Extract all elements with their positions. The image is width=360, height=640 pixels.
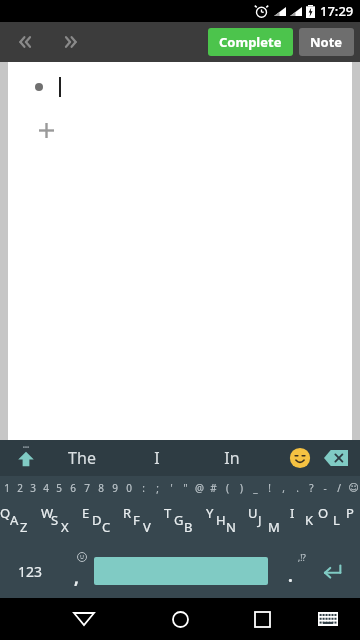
staticText: !: [268, 481, 271, 495]
staticText: _: [253, 481, 258, 495]
button[interactable]: Expand suggestions: [0, 440, 52, 476]
button[interactable]: 5: [52, 476, 66, 500]
button[interactable]: @: [192, 476, 206, 500]
button[interactable]: 1: [0, 476, 13, 500]
button[interactable]: 123: [4, 544, 56, 598]
button[interactable]: !: [262, 476, 276, 500]
button[interactable]: -: [318, 476, 332, 500]
staticText: In: [224, 447, 240, 469]
staticText: W: [41, 504, 54, 522]
staticText: 17:29: [320, 2, 354, 20]
button[interactable]: Complete: [208, 28, 293, 56]
button[interactable]: Comma: [56, 544, 92, 598]
staticText: X: [61, 518, 69, 536]
staticText: Complete: [219, 33, 282, 51]
button[interactable]: T: [164, 500, 206, 544]
staticText: Note: [310, 33, 343, 51]
button[interactable]: Backspace: [318, 440, 354, 476]
button[interactable]: Q: [0, 500, 41, 544]
staticText: /: [337, 481, 341, 495]
button[interactable]: 9: [108, 476, 122, 500]
staticText: O: [318, 504, 329, 522]
button[interactable]: Add item: [28, 112, 64, 148]
button[interactable]: (: [220, 476, 234, 500]
staticText: ;: [156, 481, 159, 495]
button[interactable]: In: [195, 440, 269, 476]
button[interactable]: [8, 70, 352, 104]
button[interactable]: ): [234, 476, 248, 500]
staticText: 2: [17, 481, 23, 495]
button[interactable]: E: [82, 500, 123, 544]
button[interactable]: 4: [39, 476, 52, 500]
button[interactable]: 7: [80, 476, 94, 500]
staticText: A: [10, 511, 19, 529]
staticText: .: [288, 564, 293, 587]
staticText: 3: [30, 481, 36, 495]
button[interactable]: Period: [276, 544, 316, 598]
button[interactable]: ,: [276, 476, 290, 500]
button[interactable]: 2: [13, 476, 26, 500]
button[interactable]: 3: [26, 476, 39, 500]
button[interactable]: Switch keyboard: [308, 599, 348, 639]
button[interactable]: Previous: [0, 22, 48, 62]
button[interactable]: Recents: [240, 598, 284, 640]
button[interactable]: _: [248, 476, 262, 500]
button[interactable]: ': [164, 476, 178, 500]
button[interactable]: U: [248, 500, 290, 544]
button[interactable]: I: [290, 500, 318, 544]
button[interactable]: :: [136, 476, 150, 500]
staticText: :: [142, 481, 145, 495]
staticText: ☺: [348, 482, 359, 494]
staticText: C: [102, 518, 111, 536]
button[interactable]: Next: [48, 22, 96, 62]
button[interactable]: 6: [66, 476, 80, 500]
button[interactable]: O: [318, 500, 346, 544]
staticText: Z: [20, 518, 28, 536]
staticText: 6: [70, 481, 76, 495]
staticText: 4: [43, 481, 49, 495]
staticText: ,: [282, 481, 285, 495]
staticText: J: [258, 511, 262, 529]
button[interactable]: Hide keyboard: [62, 598, 106, 640]
staticText: U: [248, 504, 258, 522]
button[interactable]: ☺: [346, 476, 360, 500]
button[interactable]: ": [178, 476, 192, 500]
button[interactable]: W: [41, 500, 82, 544]
button[interactable]: ?: [304, 476, 318, 500]
staticText: G: [174, 511, 184, 529]
button[interactable]: #: [206, 476, 220, 500]
button[interactable]: The: [45, 440, 119, 476]
button[interactable]: 8: [94, 476, 108, 500]
staticText: ,: [74, 566, 79, 589]
staticText: D: [92, 511, 102, 529]
staticText: 7: [84, 481, 90, 495]
staticText: -: [323, 481, 327, 495]
button[interactable]: ;: [150, 476, 164, 500]
staticText: S: [51, 511, 59, 529]
staticText: ': [170, 481, 173, 495]
button[interactable]: R: [123, 500, 164, 544]
staticText: 5: [56, 481, 62, 495]
button[interactable]: P: [346, 500, 360, 544]
staticText: #: [210, 481, 217, 495]
staticText: V: [143, 518, 151, 536]
staticText: L: [333, 511, 340, 529]
staticText: F: [133, 511, 140, 529]
staticText: 8: [98, 481, 104, 495]
button[interactable]: 0: [122, 476, 136, 500]
button[interactable]: Home: [158, 598, 202, 640]
staticText: (: [226, 481, 229, 495]
staticText: ,!?: [298, 552, 306, 563]
staticText: B: [184, 518, 193, 536]
button[interactable]: /: [332, 476, 346, 500]
button[interactable]: Y: [206, 500, 248, 544]
button[interactable]: Emoji: [282, 440, 318, 476]
button[interactable]: Note: [299, 28, 354, 56]
button[interactable]: Enter: [310, 544, 354, 598]
staticText: H: [216, 511, 226, 529]
button[interactable]: I: [120, 440, 194, 476]
staticText: Y: [206, 504, 214, 522]
button[interactable]: .: [290, 476, 304, 500]
staticText: @: [195, 481, 204, 495]
